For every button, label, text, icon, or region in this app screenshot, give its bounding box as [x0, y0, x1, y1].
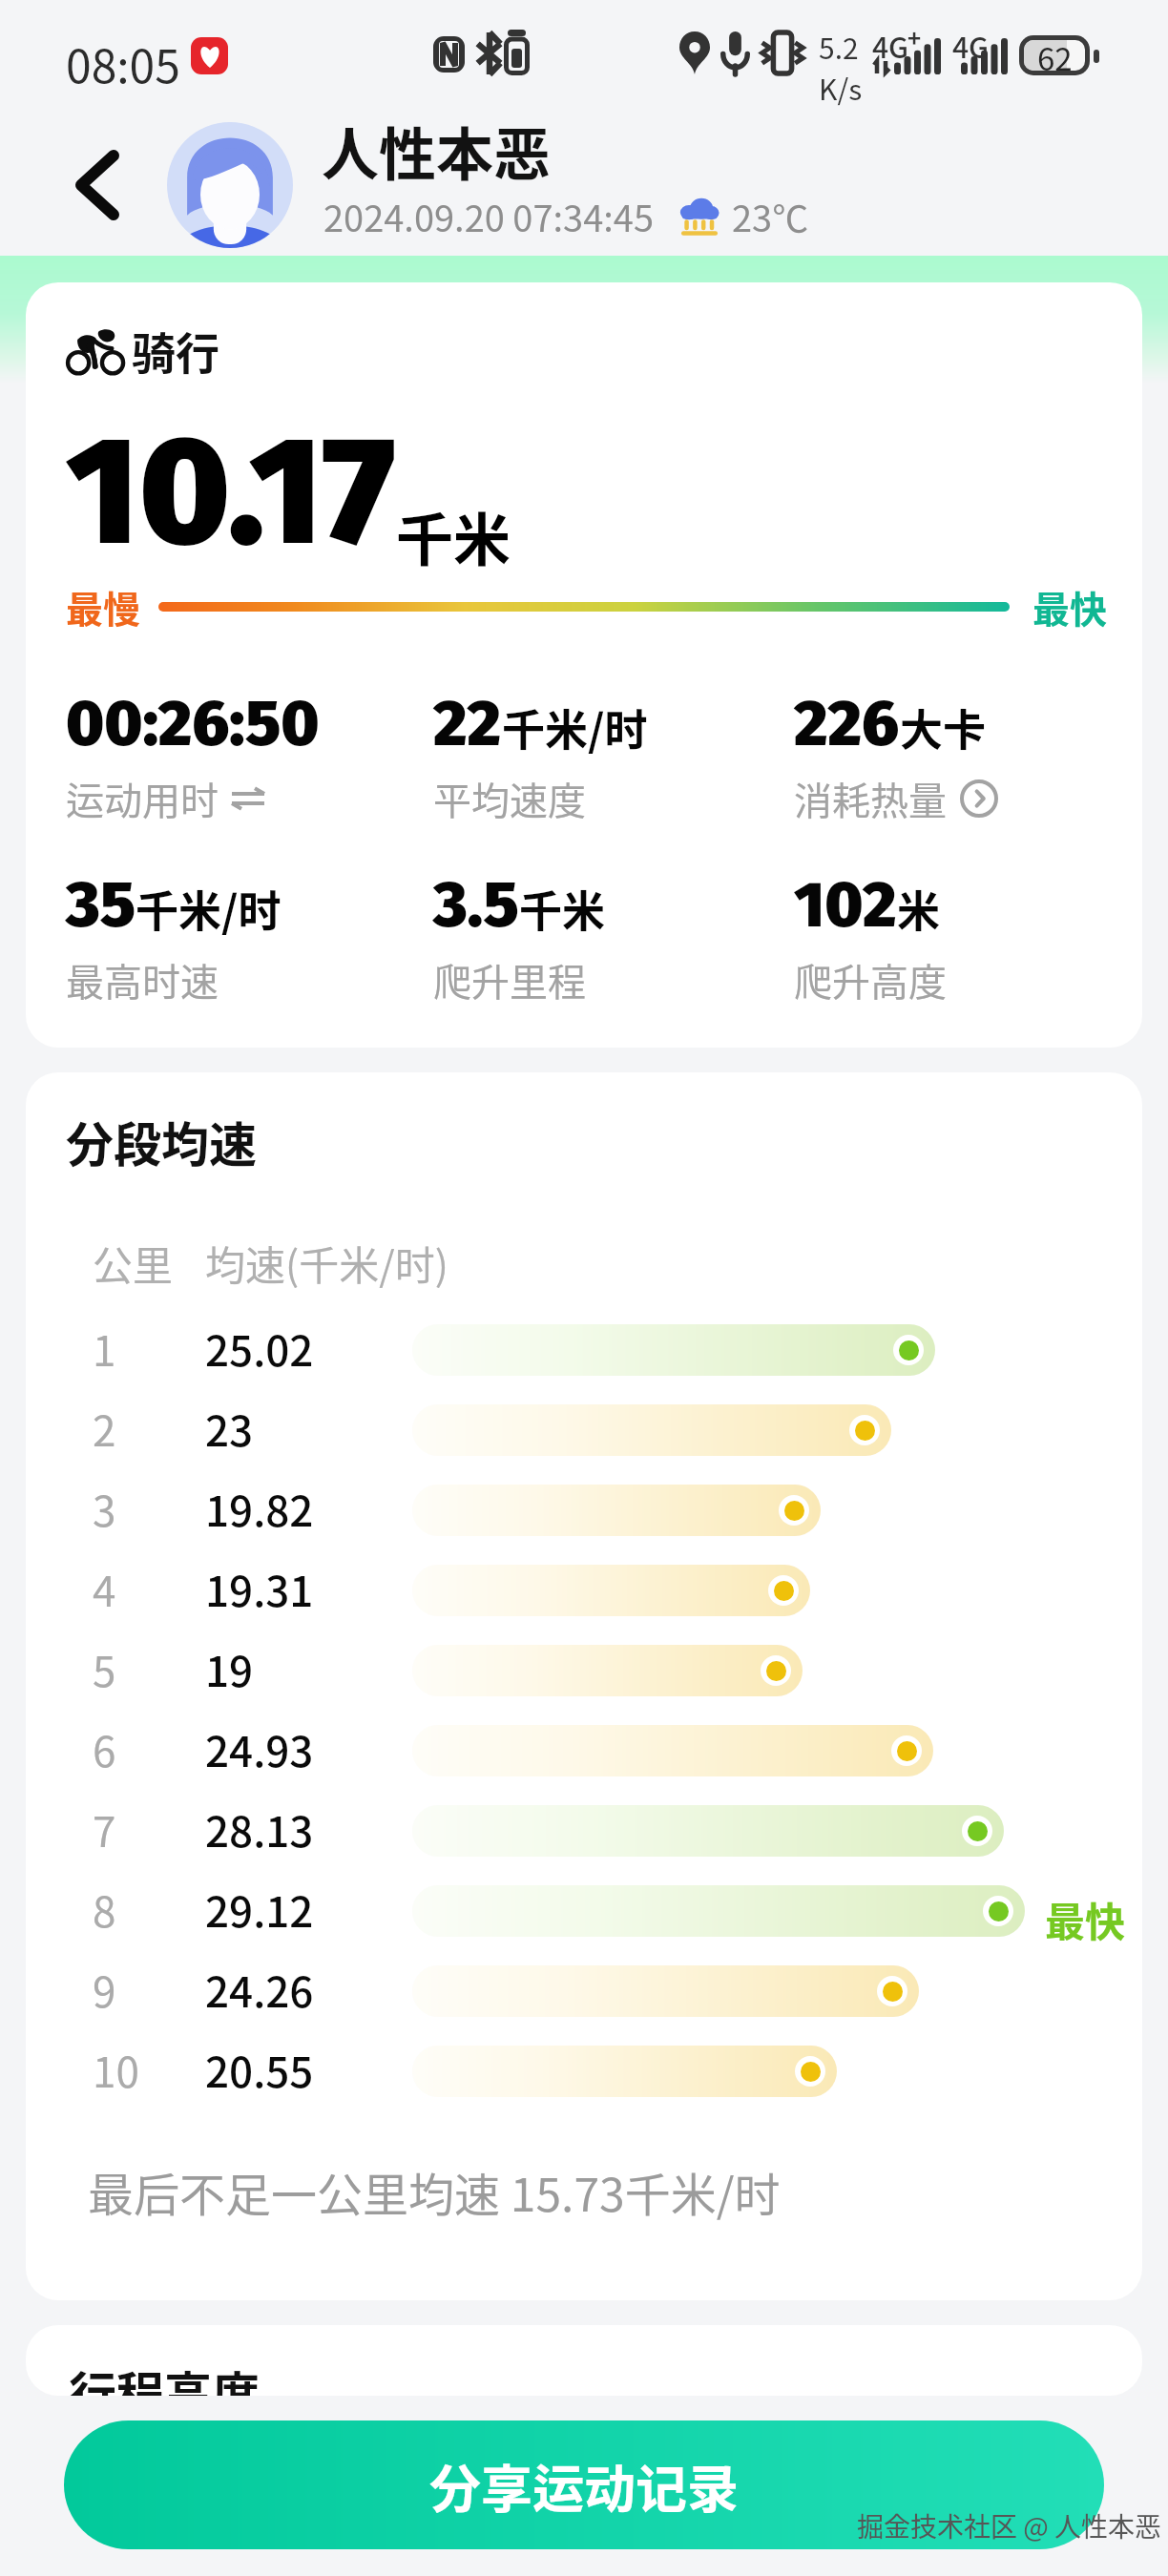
staticText: 大卡: [900, 696, 987, 758]
staticText: 5.2: [819, 26, 859, 67]
staticText: 9: [93, 1959, 116, 2010]
staticText: 08:05: [66, 30, 180, 96]
staticText: 最高时速: [66, 952, 219, 1008]
staticText: 24.93: [205, 1718, 314, 1770]
staticText: 爬升高度: [794, 952, 947, 1008]
staticText: 2024.09.20 07:34:45: [323, 190, 655, 242]
staticText: 7: [93, 1798, 116, 1850]
staticText: 千米: [396, 494, 511, 577]
staticText: 3: [93, 1478, 116, 1529]
staticText: 米: [897, 878, 941, 940]
staticText: 平均速度: [433, 771, 586, 826]
staticText: 4G: [872, 25, 909, 66]
staticText: 19: [205, 1638, 254, 1690]
staticText: 23℃: [732, 190, 809, 242]
staticText: 29.12: [205, 1879, 314, 1930]
staticText: 23: [205, 1398, 254, 1449]
staticText: 行程高度: [69, 2357, 260, 2396]
staticText: 25.02: [205, 1318, 314, 1369]
staticText: 5: [93, 1638, 116, 1690]
staticText: 最快: [1045, 1890, 1142, 1942]
staticText: 00:26:50: [66, 685, 320, 761]
staticText: 分段均速: [66, 1107, 257, 1175]
staticText: 35: [66, 866, 136, 943]
button[interactable]: 3.5: [433, 866, 606, 1008]
staticText: 爬升里程: [433, 952, 586, 1008]
staticText: 19.31: [205, 1558, 314, 1610]
staticText: 最快: [1032, 580, 1108, 634]
staticText: 掘金技术社区 @ 人性本恶: [857, 2506, 1162, 2545]
button[interactable]: 102: [794, 866, 947, 1008]
staticText: 2: [93, 1398, 116, 1449]
button[interactable]: 35: [66, 866, 282, 1008]
staticText: 千米: [519, 878, 606, 940]
staticText: 102: [794, 866, 897, 943]
staticText: 分享运动记录: [429, 2448, 739, 2523]
staticText: 10.17: [66, 401, 396, 583]
staticText: 最慢: [66, 580, 141, 634]
staticText: 24.26: [205, 1959, 314, 2010]
staticText: 4G: [952, 25, 990, 66]
button[interactable]: 226: [794, 685, 998, 826]
staticText: 均速(千米/时): [205, 1234, 448, 1292]
staticText: 运动用时: [66, 771, 219, 826]
staticText: 骑行: [132, 319, 219, 383]
button[interactable]: 22: [433, 685, 648, 826]
staticText: 千米/时: [502, 696, 648, 758]
button[interactable]: Profile photo: [167, 122, 293, 248]
staticText: K/s: [819, 67, 863, 108]
staticText: 8: [93, 1879, 116, 1930]
staticText: 6: [93, 1718, 116, 1770]
button[interactable]: 分享运动记录: [64, 2420, 1104, 2549]
staticText: 19.82: [205, 1478, 314, 1529]
staticText: 最后不足一公里均速 15.73千米/时: [88, 2158, 781, 2225]
staticText: 4: [93, 1558, 116, 1610]
staticText: 1: [93, 1318, 116, 1369]
staticText: 62: [1037, 34, 1073, 80]
staticText: 人性本恶: [322, 109, 551, 192]
staticText: 消耗热量: [794, 771, 947, 826]
staticText: 22: [433, 685, 502, 761]
staticText: 20.55: [205, 2039, 314, 2090]
staticText: 226: [794, 685, 900, 761]
staticText: 公里: [93, 1234, 174, 1292]
staticText: 千米/时: [136, 878, 282, 940]
button[interactable]: Back: [55, 143, 139, 227]
staticText: 10: [93, 2039, 139, 2090]
staticText: +: [907, 20, 922, 53]
button[interactable]: 00:26:50: [66, 685, 320, 826]
staticText: 28.13: [205, 1798, 314, 1850]
staticText: 3.5: [433, 866, 519, 943]
